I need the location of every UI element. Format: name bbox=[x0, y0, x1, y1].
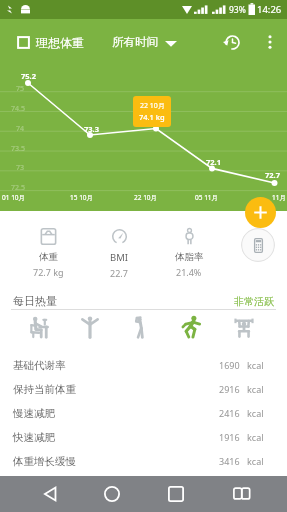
button[interactable]: Calculator bbox=[241, 228, 275, 262]
button[interactable]: Back bbox=[37, 480, 64, 507]
staticText: 75.2 bbox=[21, 71, 36, 81]
staticText: 1916 bbox=[219, 431, 240, 443]
staticText: 体重增长缓慢 bbox=[13, 455, 76, 468]
button[interactable]: 快速减肥 bbox=[0, 425, 287, 449]
button[interactable]: 基础代谢率 bbox=[0, 353, 287, 377]
staticText: 22 10月 bbox=[140, 101, 165, 111]
staticText: 74.5 bbox=[11, 104, 25, 114]
staticText: 72.7 kg bbox=[33, 266, 64, 278]
button[interactable]: 体重 bbox=[18, 228, 78, 278]
staticText: 15 10月 bbox=[70, 193, 94, 202]
button[interactable]: Activity level 2 bbox=[77, 314, 103, 340]
staticText: 05 11月 bbox=[195, 193, 219, 202]
staticText: 74 bbox=[16, 124, 25, 134]
staticText: 3416 bbox=[219, 455, 240, 467]
staticText: 72.7 bbox=[265, 170, 280, 180]
staticText: BMI bbox=[110, 251, 129, 264]
staticText: 2916 bbox=[219, 383, 240, 395]
button[interactable]: Home bbox=[98, 480, 125, 507]
staticText: 22.7 bbox=[110, 267, 128, 279]
button[interactable]: 慢速减肥 bbox=[0, 401, 287, 425]
staticText: 所有时间 bbox=[112, 35, 158, 49]
staticText: 1690 bbox=[219, 359, 240, 371]
button[interactable]: 体脂率 bbox=[159, 228, 219, 278]
button[interactable]: Activity level 4 bbox=[178, 314, 204, 340]
button[interactable]: BMI bbox=[89, 228, 149, 279]
staticText: kcal bbox=[247, 431, 264, 443]
staticText: 93% bbox=[229, 4, 246, 16]
staticText: 74.1 kg bbox=[139, 112, 165, 122]
staticText: kcal bbox=[247, 455, 264, 467]
button[interactable]: 所有时间 bbox=[107, 30, 182, 54]
button[interactable]: Add weight entry bbox=[245, 197, 276, 228]
button[interactable]: Recents bbox=[162, 480, 189, 507]
staticText: 14:26 bbox=[257, 3, 282, 16]
button[interactable]: 理想体重 bbox=[12, 30, 89, 55]
staticText: 保持当前体重 bbox=[13, 383, 76, 396]
staticText: 快速减肥 bbox=[13, 431, 55, 444]
staticText: 73 bbox=[16, 163, 25, 173]
staticText: 72.5 bbox=[11, 183, 25, 193]
staticText: 01 10月 bbox=[2, 193, 26, 202]
button[interactable]: Activity level 5 bbox=[231, 314, 257, 340]
staticText: 75 bbox=[16, 84, 25, 94]
staticText: 非常活跃 bbox=[234, 295, 274, 308]
staticText: 2416 bbox=[219, 407, 240, 419]
staticText: kcal bbox=[247, 407, 264, 419]
button[interactable]: More options bbox=[257, 29, 283, 55]
staticText: 体脂率 bbox=[175, 251, 204, 263]
staticText: 每日热量 bbox=[13, 294, 57, 308]
staticText: 理想体重 bbox=[36, 35, 84, 50]
button[interactable]: Split screen bbox=[228, 480, 255, 507]
button[interactable]: 保持当前体重 bbox=[0, 377, 287, 401]
button[interactable]: 体重增长缓慢 bbox=[0, 449, 287, 473]
staticText: 体重 bbox=[39, 251, 58, 263]
staticText: kcal bbox=[247, 359, 264, 371]
staticText: 慢速减肥 bbox=[13, 407, 55, 420]
button[interactable]: History bbox=[219, 29, 246, 56]
staticText: 22 10月 bbox=[134, 193, 158, 202]
staticText: 21.4% bbox=[176, 266, 202, 278]
staticText: 72.1 bbox=[206, 157, 221, 167]
staticText: 基础代谢率 bbox=[13, 359, 66, 372]
staticText: 11月 bbox=[272, 193, 286, 202]
staticText: 73.5 bbox=[11, 144, 25, 154]
staticText: 73.3 bbox=[84, 124, 99, 134]
staticText: kcal bbox=[247, 383, 264, 395]
button[interactable]: Activity level 3 bbox=[126, 314, 152, 340]
button[interactable]: Activity level 1 bbox=[27, 314, 53, 340]
